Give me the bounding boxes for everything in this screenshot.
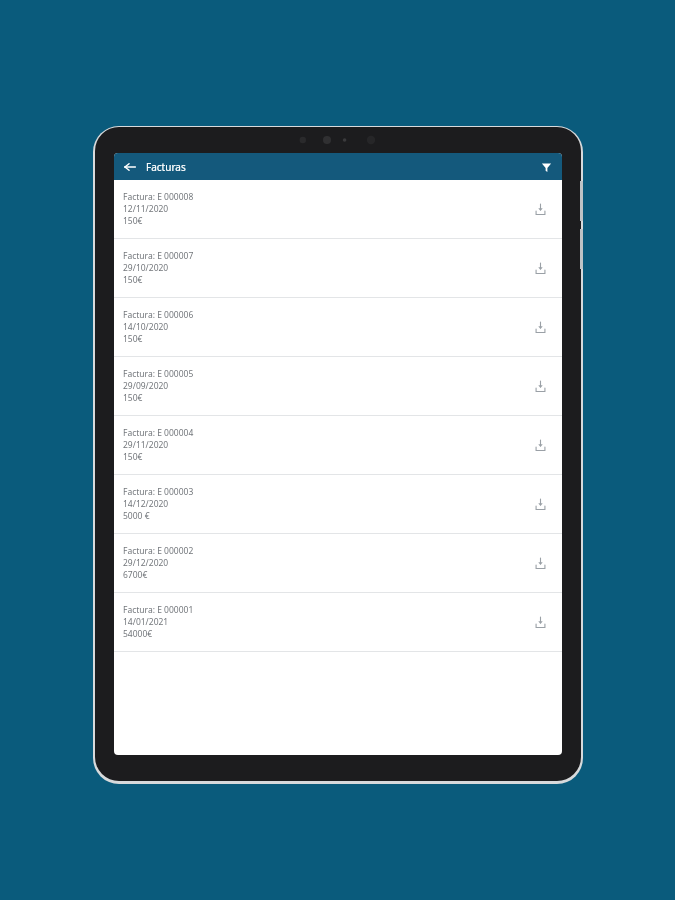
button[interactable]: Download invoice Factura: E 000001 xyxy=(528,610,552,634)
staticText: Factura: E 000005 xyxy=(123,368,194,380)
staticText: 5000 € xyxy=(123,510,150,522)
staticText: 150€ xyxy=(123,392,143,404)
button[interactable]: Download invoice Factura: E 000007 xyxy=(528,256,552,280)
staticText: 150€ xyxy=(123,333,143,345)
staticText: 14/12/2020 xyxy=(123,498,169,510)
staticText: 29/11/2020 xyxy=(123,439,169,451)
staticText: 14/10/2020 xyxy=(123,321,169,333)
staticText: 29/09/2020 xyxy=(123,380,169,392)
button[interactable]: Factura: E 000008 xyxy=(114,180,562,238)
button[interactable]: Download invoice Factura: E 000006 xyxy=(528,315,552,339)
button[interactable]: Factura: E 000001 xyxy=(114,593,562,651)
button[interactable]: Download invoice Factura: E 000004 xyxy=(528,433,552,457)
button[interactable]: Factura: E 000007 xyxy=(114,239,562,297)
staticText: 29/12/2020 xyxy=(123,557,169,569)
staticText: Facturas xyxy=(146,160,186,174)
button[interactable]: Factura: E 000006 xyxy=(114,298,562,356)
staticText: 150€ xyxy=(123,274,143,286)
staticText: Factura: E 000002 xyxy=(123,545,194,557)
staticText: 54000€ xyxy=(123,628,153,640)
button[interactable]: Back xyxy=(120,157,140,177)
staticText: 6700€ xyxy=(123,569,148,581)
button[interactable]: Download invoice Factura: E 000008 xyxy=(528,197,552,221)
staticText: Factura: E 000004 xyxy=(123,427,194,439)
staticText: Factura: E 000008 xyxy=(123,191,194,203)
staticText: 150€ xyxy=(123,215,143,227)
staticText: 14/01/2021 xyxy=(123,616,169,628)
staticText: Factura: E 000001 xyxy=(123,604,194,616)
staticText: Factura: E 000003 xyxy=(123,486,194,498)
staticText: Factura: E 000006 xyxy=(123,309,194,321)
button[interactable]: Factura: E 000002 xyxy=(114,534,562,592)
button[interactable]: Factura: E 000005 xyxy=(114,357,562,415)
button[interactable]: Download invoice Factura: E 000002 xyxy=(528,551,552,575)
staticText: Factura: E 000007 xyxy=(123,250,194,262)
button[interactable]: Download invoice Factura: E 000003 xyxy=(528,492,552,516)
button[interactable]: Factura: E 000003 xyxy=(114,475,562,533)
button[interactable]: Factura: E 000004 xyxy=(114,416,562,474)
staticText: 29/10/2020 xyxy=(123,262,169,274)
button[interactable]: Download invoice Factura: E 000005 xyxy=(528,374,552,398)
staticText: 150€ xyxy=(123,451,143,463)
staticText: 12/11/2020 xyxy=(123,203,169,215)
button[interactable]: Filter xyxy=(535,156,557,178)
